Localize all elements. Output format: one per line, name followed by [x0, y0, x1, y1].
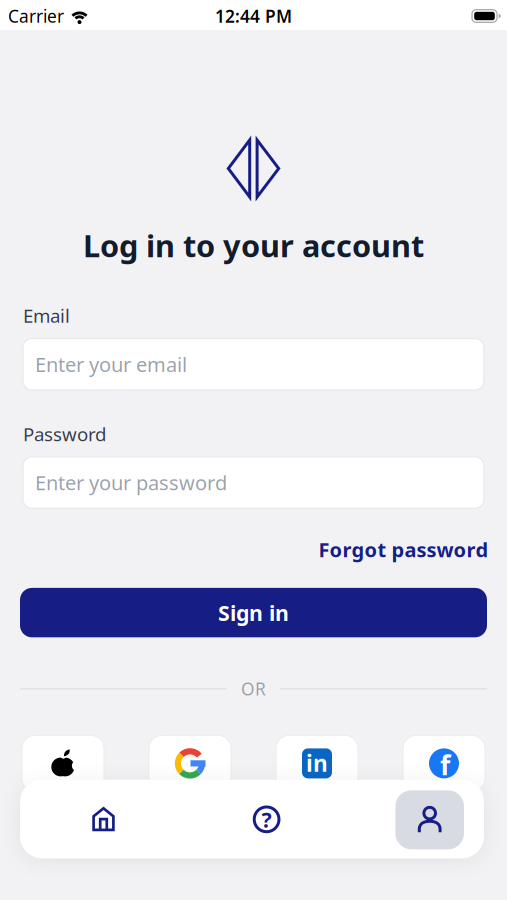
button[interactable]: Forgot password — [318, 536, 488, 563]
button[interactable] — [73, 789, 133, 849]
staticText: OR — [241, 677, 266, 700]
button[interactable] — [395, 790, 464, 849]
staticText: Enter your password — [35, 469, 227, 496]
button[interactable] — [22, 735, 104, 791]
staticText: Password — [23, 421, 106, 446]
staticText: ? — [262, 805, 272, 833]
staticText: f — [440, 747, 450, 783]
button[interactable]: Sign in — [0, 588, 507, 637]
button[interactable]: in — [276, 735, 358, 791]
staticText: 12:44 PM — [215, 4, 292, 27]
button[interactable] — [149, 735, 231, 791]
staticText: Forgot password — [318, 536, 488, 563]
staticText: Sign in — [218, 598, 289, 627]
button[interactable]: f — [403, 735, 485, 791]
staticText: Carrier — [8, 4, 64, 27]
staticText: Enter your email — [35, 351, 187, 378]
staticText: Log in to your account — [83, 225, 424, 266]
staticText: Email — [23, 303, 70, 328]
button[interactable]: ? — [237, 789, 297, 849]
staticText: in — [306, 748, 328, 778]
